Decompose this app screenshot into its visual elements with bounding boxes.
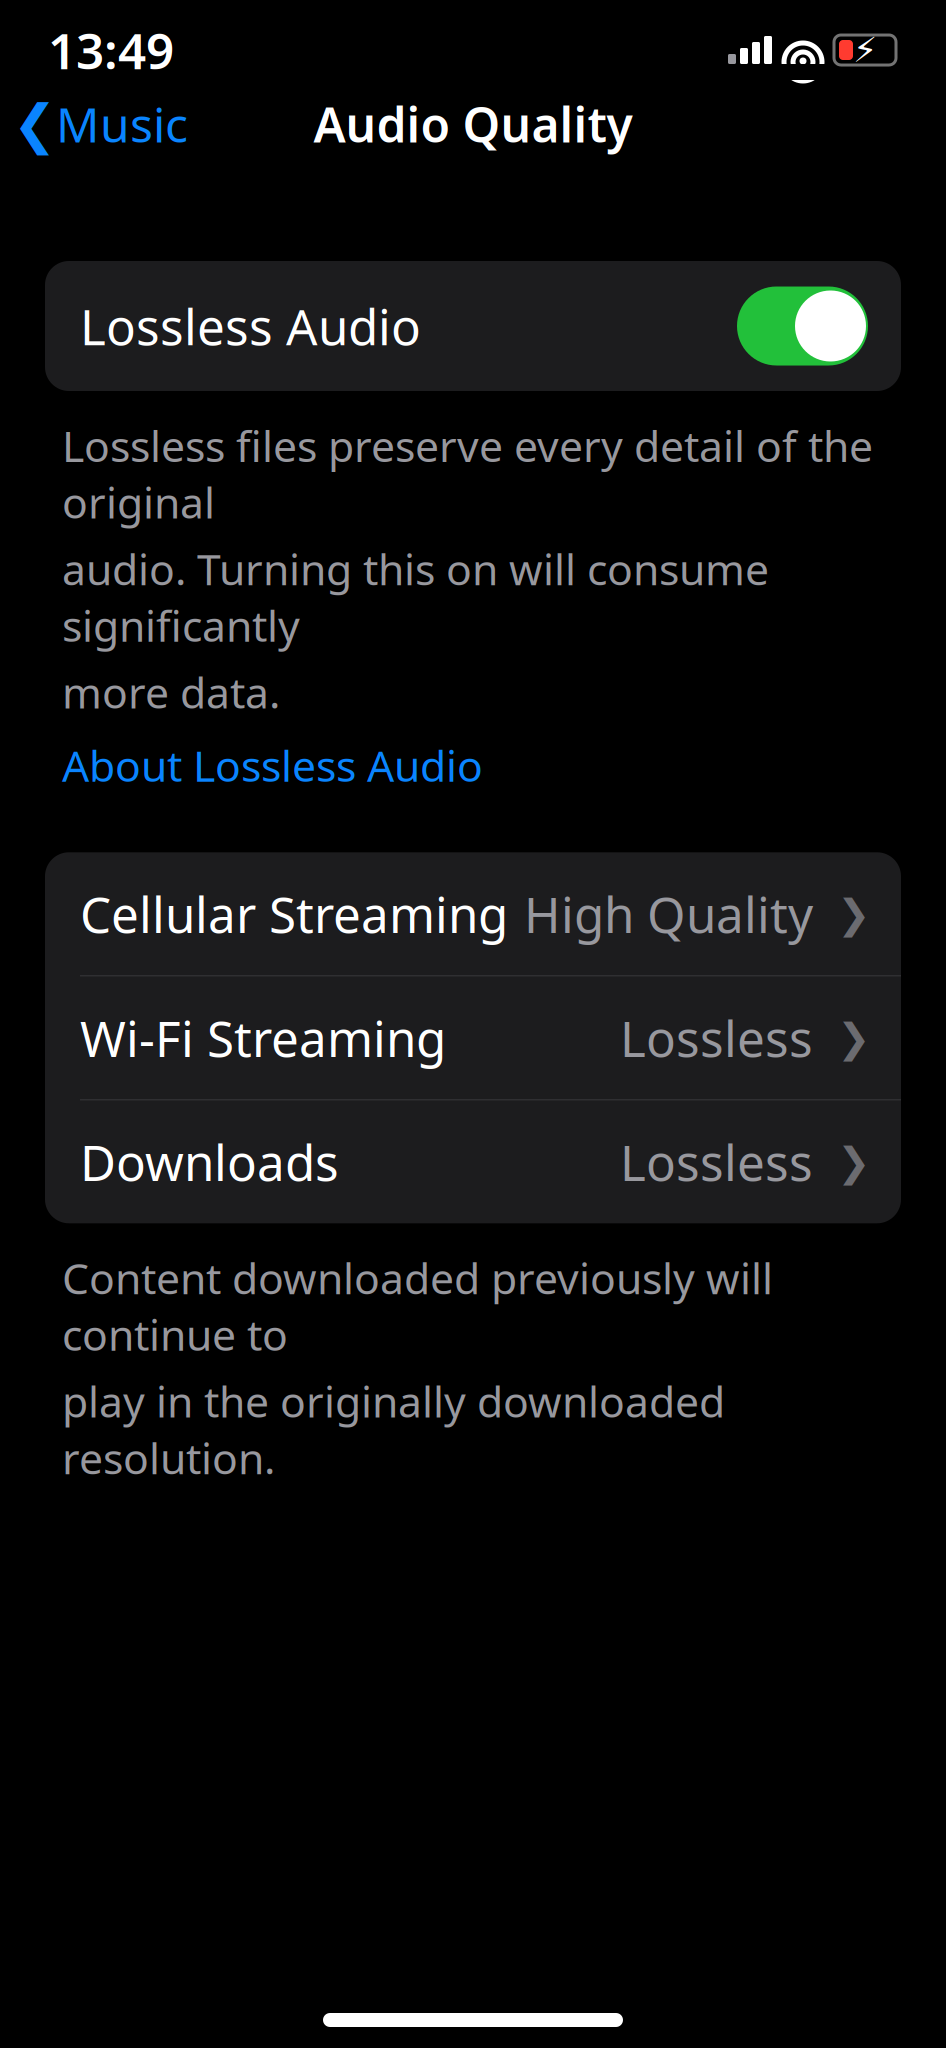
- staticText: ❯: [837, 1015, 871, 1060]
- staticText: 13:49: [48, 17, 174, 83]
- staticText: High Quality: [524, 881, 813, 946]
- staticText: Audio Quality: [313, 92, 632, 156]
- staticText: Lossless files preserve every detail of …: [62, 417, 873, 530]
- staticText: About Lossless Audio: [62, 737, 483, 794]
- staticText: audio. Turning this on will consume sign…: [62, 540, 769, 654]
- staticText: ❯: [837, 891, 871, 936]
- staticText: ❯: [837, 1139, 871, 1184]
- staticText: Music: [56, 92, 188, 156]
- staticText: Cellular Streaming: [80, 881, 508, 946]
- staticText: more data.: [62, 664, 280, 720]
- button[interactable]: About Lossless Audio: [62, 740, 884, 790]
- staticText: Wi-Fi Streaming: [80, 1005, 446, 1070]
- button[interactable]: Wi-Fi Streaming: [45, 976, 901, 1099]
- staticText: play in the originally downloaded resolu…: [62, 1373, 725, 1486]
- staticText: Content downloaded previously will conti…: [62, 1249, 773, 1363]
- staticText: Lossless Audio: [80, 293, 421, 359]
- staticText: Downloads: [80, 1129, 339, 1194]
- button[interactable]: Lossless Audio: [45, 261, 901, 391]
- button[interactable]: Downloads: [45, 1100, 901, 1223]
- staticText: Lossless: [620, 1129, 813, 1194]
- staticText: ❮: [12, 94, 57, 154]
- button[interactable]: Cellular Streaming: [45, 852, 901, 975]
- button[interactable]: ❮: [0, 92, 202, 156]
- staticText: Lossless: [620, 1005, 813, 1070]
- staticText: ⚡︎: [853, 30, 877, 70]
